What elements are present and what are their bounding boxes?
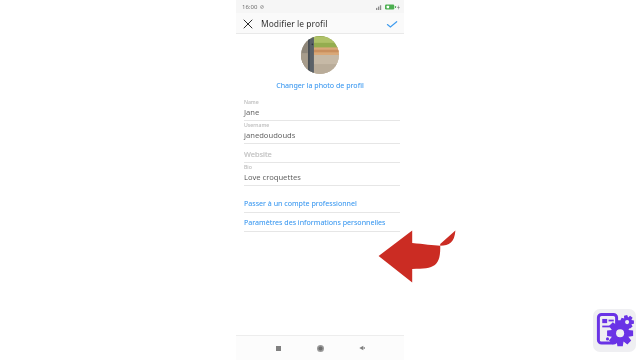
- button[interactable]: Website: [236, 144, 404, 163]
- button[interactable]: Bio: [236, 163, 404, 186]
- staticText: Passer à un compte professionnel: [244, 198, 357, 208]
- staticText: Website: [244, 149, 272, 159]
- staticText: Bio: [244, 163, 252, 170]
- button[interactable]: Name: [236, 98, 404, 121]
- staticText: Modifier le profil: [261, 18, 328, 29]
- button[interactable]: Paramètres des informations personnelles: [236, 213, 404, 232]
- staticText: 16:00: [242, 3, 258, 11]
- button[interactable]: Applications récentes: [270, 340, 286, 356]
- button[interactable]: Passer à un compte professionnel: [236, 194, 404, 213]
- button[interactable]: Photo de profil: [301, 36, 339, 74]
- button[interactable]: Accueil: [312, 340, 328, 356]
- staticText: Jane: [244, 107, 260, 117]
- button[interactable]: Retour: [354, 340, 370, 356]
- button[interactable]: Username: [236, 121, 404, 144]
- staticText: Paramètres des informations personnelles: [244, 217, 386, 227]
- staticText: Love croquettes: [244, 172, 301, 182]
- staticText: Changer la photo de profil: [276, 80, 364, 90]
- staticText: janedoudouds: [244, 130, 296, 140]
- button[interactable]: Logo: [593, 309, 636, 352]
- staticText: Username: [244, 121, 270, 128]
- button[interactable]: Valider: [384, 16, 400, 32]
- button[interactable]: Fermer: [240, 16, 256, 32]
- button[interactable]: Changer la photo de profil: [270, 79, 370, 91]
- staticText: Name: [244, 98, 259, 105]
